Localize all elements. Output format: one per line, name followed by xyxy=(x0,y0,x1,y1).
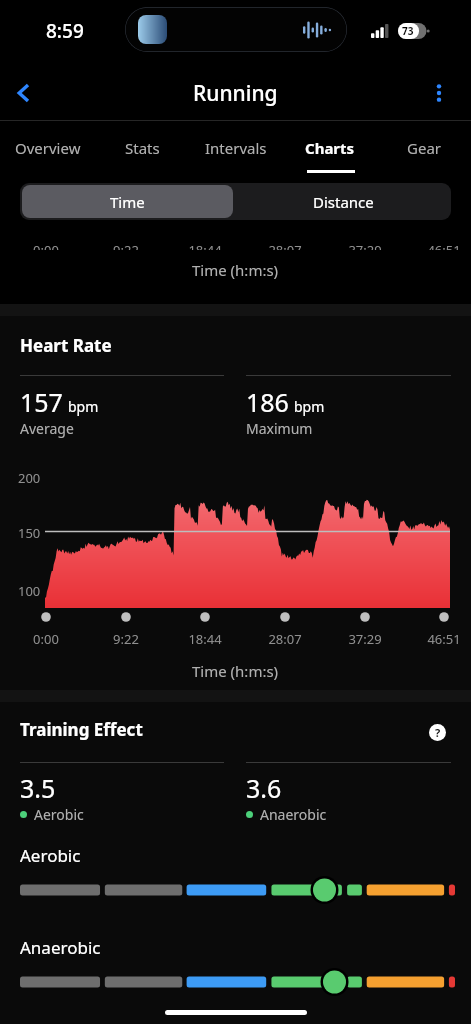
staticText: 9:22 xyxy=(113,630,139,648)
staticText: Intervals xyxy=(205,138,267,158)
staticText: 3.5 xyxy=(20,771,56,805)
staticText: 18:44 xyxy=(188,630,222,648)
staticText: ? xyxy=(435,725,441,740)
staticText: 186 xyxy=(246,385,289,419)
button[interactable]: Stats xyxy=(95,121,189,175)
staticText: 28:07 xyxy=(268,630,302,648)
staticText: Distance xyxy=(313,192,374,212)
button[interactable]: More options xyxy=(417,71,461,115)
staticText: bpm xyxy=(68,397,99,416)
staticText: Overview xyxy=(15,138,81,158)
staticText: Time (h:m:s) xyxy=(192,661,279,681)
button[interactable]: Overview xyxy=(0,121,95,175)
staticText: Anaerobic xyxy=(260,805,327,824)
staticText: 73 xyxy=(402,24,414,38)
staticText: 28:07 xyxy=(268,241,302,250)
button[interactable]: Gear xyxy=(377,121,471,175)
staticText: Time (h:m:s) xyxy=(192,260,279,280)
staticText: Running xyxy=(193,79,278,108)
staticText: Gear xyxy=(407,138,441,158)
button[interactable]: Time xyxy=(22,185,233,218)
staticText: 150 xyxy=(18,524,41,542)
staticText: 37:29 xyxy=(348,241,382,250)
staticText: 0:00 xyxy=(33,241,59,250)
staticText: 9:22 xyxy=(113,241,139,250)
staticText: Training Effect xyxy=(20,718,143,741)
staticText: Aerobic xyxy=(20,844,81,867)
staticText: Stats xyxy=(125,138,160,158)
staticText: 8:59 xyxy=(46,18,84,44)
staticText: 37:29 xyxy=(348,630,382,648)
staticText: Charts xyxy=(305,138,355,158)
staticText: 46:51 xyxy=(427,630,461,648)
button[interactable]: Back xyxy=(2,71,46,115)
staticText: Time xyxy=(110,192,145,212)
staticText: Anaerobic xyxy=(20,936,101,959)
staticText: bpm xyxy=(294,397,325,416)
button[interactable]: Intervals xyxy=(189,121,283,175)
staticText: 100 xyxy=(18,582,41,600)
staticText: Aerobic xyxy=(34,805,84,824)
staticText: 200 xyxy=(18,469,41,487)
staticText: 3.6 xyxy=(246,771,282,805)
staticText: 157 xyxy=(20,385,63,419)
staticText: Maximum xyxy=(246,419,313,438)
staticText: 0:00 xyxy=(33,630,59,648)
button[interactable]: Help xyxy=(423,718,451,746)
staticText: Heart Rate xyxy=(20,334,112,357)
button[interactable]: Charts xyxy=(283,121,377,175)
staticText: 18:44 xyxy=(188,241,222,250)
staticText: Average xyxy=(20,419,74,438)
button[interactable]: Distance xyxy=(235,183,451,220)
staticText: 46:51 xyxy=(427,241,461,250)
